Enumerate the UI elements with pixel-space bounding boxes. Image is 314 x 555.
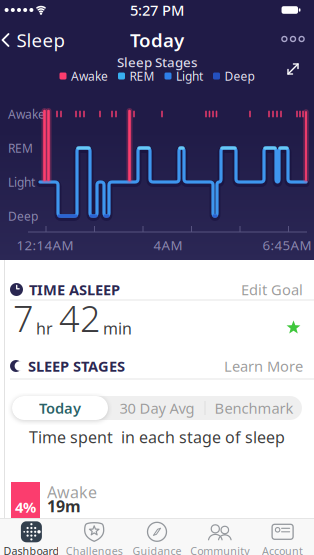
staticText: TIME ASLEEP bbox=[29, 280, 120, 299]
staticText: 4% bbox=[15, 497, 36, 517]
staticText: 4AM bbox=[153, 236, 182, 254]
button[interactable]: Dashboard bbox=[0, 521, 63, 555]
staticText: Challenges bbox=[66, 544, 123, 555]
staticText: Learn More bbox=[224, 356, 303, 376]
staticText: 5:27 PM bbox=[130, 0, 184, 20]
staticText: Sleep Stages bbox=[117, 53, 197, 71]
staticText: REM bbox=[8, 140, 33, 156]
staticText: 7 bbox=[13, 294, 34, 342]
staticText: SLEEP STAGES bbox=[28, 356, 125, 376]
button[interactable]: 30 Day Avg bbox=[109, 396, 205, 420]
button[interactable]: Account bbox=[251, 521, 314, 555]
staticText: Awake bbox=[71, 68, 108, 84]
staticText: 19m bbox=[47, 495, 81, 517]
staticText: 6:45AM bbox=[262, 236, 311, 254]
staticText: Account bbox=[262, 544, 303, 555]
staticText: Time spent in each stage of sleep bbox=[29, 426, 285, 448]
staticText: Light bbox=[176, 68, 203, 84]
button[interactable]: Benchmark bbox=[206, 396, 302, 420]
button[interactable]: More bbox=[282, 36, 304, 41]
staticText: Awake bbox=[47, 481, 97, 503]
staticText: Edit Goal bbox=[241, 280, 303, 299]
staticText: hr bbox=[36, 318, 53, 339]
staticText: Sleep bbox=[16, 28, 64, 52]
staticText: Guidance bbox=[132, 544, 181, 555]
button[interactable]: Today bbox=[12, 396, 108, 420]
staticText: Awake bbox=[8, 106, 45, 122]
staticText: 12:14AM bbox=[16, 236, 73, 254]
button[interactable]: Sleep bbox=[1, 28, 64, 52]
staticText: 30 Day Avg bbox=[119, 398, 194, 418]
staticText: Deep bbox=[224, 68, 254, 84]
staticText: Today bbox=[39, 398, 81, 418]
staticText: Benchmark bbox=[214, 398, 293, 418]
button[interactable]: Edit Goal bbox=[241, 280, 303, 299]
staticText: min bbox=[103, 318, 132, 339]
staticText: Dashboard bbox=[3, 544, 59, 555]
button[interactable]: Expand chart bbox=[286, 62, 300, 76]
staticText: 42 bbox=[59, 294, 101, 342]
staticText: Community bbox=[190, 544, 249, 555]
button[interactable]: Community bbox=[188, 521, 251, 555]
staticText: Deep bbox=[8, 208, 38, 224]
button[interactable]: Guidance bbox=[126, 521, 188, 555]
staticText: Today bbox=[130, 28, 184, 52]
button[interactable]: Challenges bbox=[63, 521, 126, 555]
button[interactable]: Learn More bbox=[224, 356, 303, 376]
staticText: REM bbox=[129, 68, 154, 84]
staticText: Light bbox=[8, 174, 35, 190]
